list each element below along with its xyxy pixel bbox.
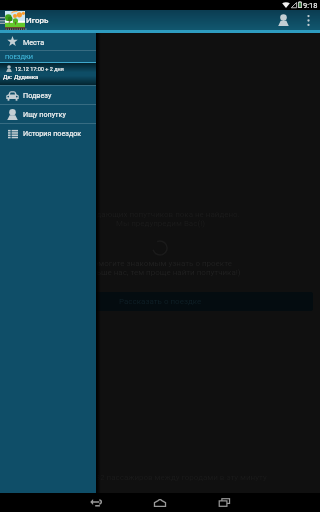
staticText: Дк: Дудинка [3, 73, 39, 80]
button[interactable]: Подвезу [0, 86, 96, 104]
button[interactable]: Рассказать о поездке [7, 292, 313, 311]
staticText: Игорь [26, 16, 49, 25]
staticText: Подвезу [23, 91, 52, 99]
staticText: ПОЕЗДКИ [5, 53, 34, 60]
button[interactable]: Места [0, 33, 96, 50]
staticText: 9:18 [303, 1, 318, 8]
staticText: Рассказать о поездке [119, 297, 202, 306]
staticText: (больше нас, тем проще найти попутчика!) [80, 268, 241, 277]
staticText: Помогите знакомым узнать о проекте [88, 259, 232, 268]
button[interactable]: Open navigation drawer [0, 10, 5, 30]
button[interactable]: Account [270, 10, 297, 30]
staticText: Места [23, 38, 45, 46]
button[interactable]: История поездок [0, 124, 96, 142]
button[interactable]: Recents [213, 493, 235, 512]
button[interactable]: Ищу попутку [0, 105, 96, 123]
button[interactable]: App icon [5, 11, 25, 30]
button[interactable]: Home [149, 493, 171, 512]
button[interactable]: 12.12 17:00 + 2 дня [0, 63, 96, 85]
staticText: Ожидающих попутчиков пока не найдено. [80, 210, 240, 219]
staticText: Ищу попутку [23, 110, 66, 118]
button[interactable]: Back [85, 493, 107, 512]
staticText: Нас уже 2682 пассажиров между городами в… [54, 473, 267, 482]
button[interactable]: More options [297, 10, 319, 30]
staticText: 12.12 17:00 + 2 дня [15, 66, 64, 72]
staticText: История поездок [23, 129, 82, 137]
